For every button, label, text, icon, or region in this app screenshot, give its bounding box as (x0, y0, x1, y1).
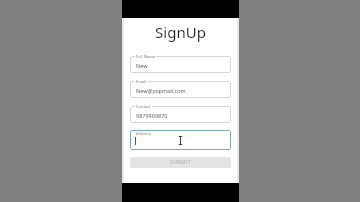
staticText: 9879909870 (136, 112, 168, 119)
staticText: Address (136, 131, 152, 136)
staticText: SUBMIT (170, 159, 192, 166)
staticText: New@yopmail.com (136, 87, 186, 94)
button[interactable]: Contact (130, 104, 231, 121)
other: Text cursor (178, 136, 183, 145)
staticText: SignUp (130, 22, 231, 42)
staticText: Email (136, 79, 147, 84)
button[interactable]: Full Name (130, 54, 231, 71)
staticText: Contact (136, 104, 151, 109)
button[interactable]: Address (130, 129, 231, 149)
button[interactable]: SUBMIT (130, 157, 231, 168)
staticText: New (136, 62, 148, 69)
button[interactable]: Email (130, 79, 231, 96)
staticText: Full Name (136, 54, 155, 59)
